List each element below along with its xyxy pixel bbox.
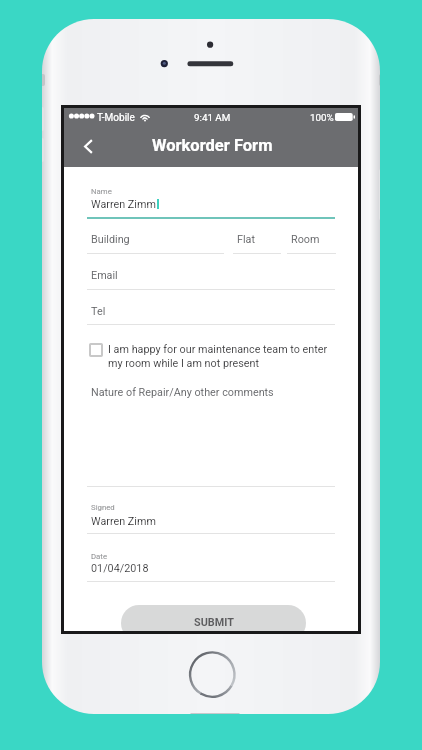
- staticText: Room: [291, 233, 320, 246]
- staticText: 9:41 AM: [194, 112, 231, 123]
- staticText: Name: [91, 187, 112, 196]
- staticText: 100%: [310, 112, 334, 123]
- button[interactable]: [87, 265, 335, 289]
- button[interactable]: SUBMIT: [121, 605, 306, 631]
- staticText: T-Mobile: [97, 112, 135, 124]
- button[interactable]: I am happy for our maintenance team to e…: [89, 343, 333, 369]
- button[interactable]: [87, 502, 335, 534]
- staticText: Building: [91, 233, 130, 246]
- staticText: Date: [91, 552, 108, 561]
- button[interactable]: [233, 229, 281, 253]
- button[interactable]: [87, 383, 335, 487]
- button[interactable]: Back: [72, 132, 104, 160]
- button[interactable]: [87, 549, 335, 581]
- staticText: Tel: [91, 305, 106, 318]
- staticText: SUBMIT: [194, 616, 234, 629]
- staticText: Warren Zimm: [91, 198, 156, 211]
- button[interactable]: [87, 186, 335, 218]
- staticText: Signed: [91, 503, 115, 512]
- staticText: Nature of Repair/Any other comments: [91, 386, 274, 399]
- button[interactable]: [87, 229, 224, 253]
- staticText: 01/04/2018: [91, 562, 149, 575]
- staticText: I am happy for our maintenance team to e…: [108, 343, 333, 369]
- button[interactable]: [287, 229, 336, 253]
- staticText: Email: [91, 269, 118, 282]
- staticText: Workorder Form: [152, 136, 273, 155]
- staticText: Flat: [237, 233, 255, 246]
- staticText: Warren Zimm: [91, 515, 156, 528]
- button[interactable]: [87, 301, 335, 325]
